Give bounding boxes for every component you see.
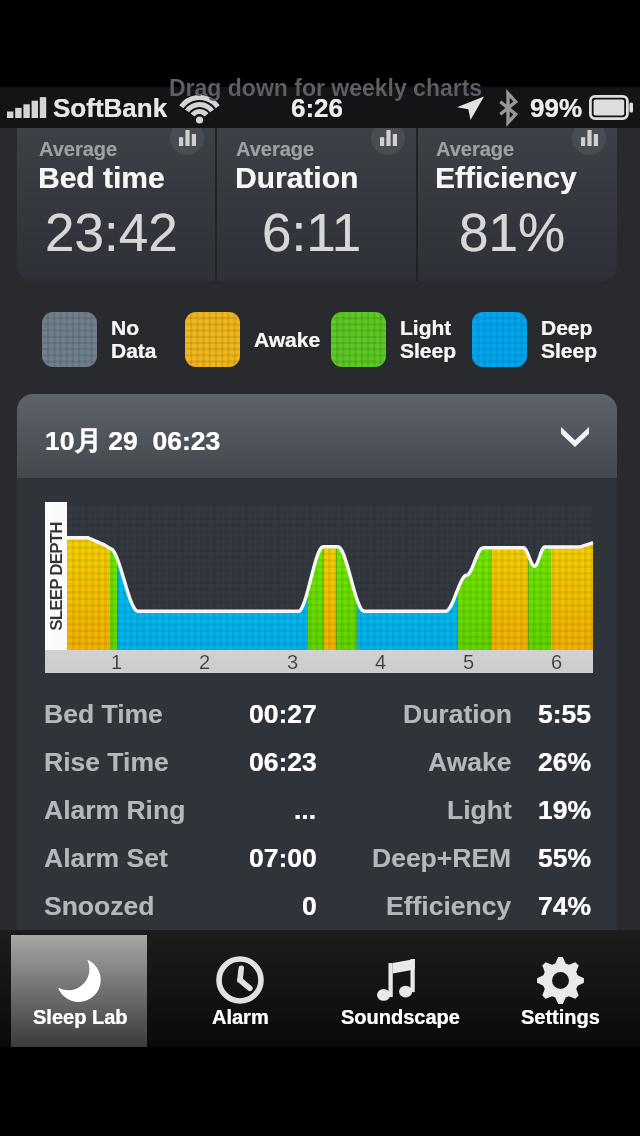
staticText: 6:26 xyxy=(291,93,344,122)
button[interactable]: Settings xyxy=(480,930,640,1047)
button[interactable]: Snoozed xyxy=(17,882,617,930)
staticText: 81% xyxy=(459,203,566,262)
staticText: Efficiency xyxy=(435,161,577,195)
staticText: 5 xyxy=(463,651,475,673)
staticText: Light xyxy=(447,795,512,825)
staticText: 4 xyxy=(375,651,387,673)
staticText: Alarm Ring xyxy=(44,795,186,825)
staticText: Deep+REM xyxy=(372,843,512,873)
staticText: ... xyxy=(294,795,317,825)
staticText: SLEEP DEPTH xyxy=(46,501,65,651)
staticText: Sleep Lab xyxy=(33,1006,128,1028)
staticText: Duration xyxy=(403,699,512,729)
staticText: Average xyxy=(236,138,315,160)
button[interactable]: Light Sleep xyxy=(331,312,457,367)
button[interactable]: Alarm Ring xyxy=(17,786,617,834)
staticText: Bed Time xyxy=(44,699,163,729)
button[interactable]: Soundscape xyxy=(320,930,480,1047)
staticText: Alarm xyxy=(212,1006,269,1028)
staticText: 19% xyxy=(538,795,592,825)
staticText: Average xyxy=(39,138,118,160)
staticText: Alarm Set xyxy=(44,843,168,873)
staticText: 74% xyxy=(538,891,592,921)
button[interactable]: Rise Time xyxy=(17,738,617,786)
button[interactable]: Sleep Lab xyxy=(0,930,160,1047)
staticText: Average xyxy=(436,138,515,160)
staticText: 0 xyxy=(302,891,317,921)
staticText: 07:00 xyxy=(249,843,317,873)
staticText: 3 xyxy=(287,651,299,673)
button[interactable]: Awake xyxy=(185,312,321,367)
button[interactable]: Show chart xyxy=(371,121,405,155)
button[interactable]: Alarm xyxy=(160,930,320,1047)
other: Expand entry xyxy=(561,427,589,447)
staticText: 55% xyxy=(538,843,592,873)
staticText: 99% xyxy=(530,93,583,122)
staticText: Deep Sleep xyxy=(541,316,598,363)
staticText: 23:42 xyxy=(45,203,178,262)
staticText: Settings xyxy=(521,1006,600,1028)
button[interactable]: Average xyxy=(217,113,416,281)
button[interactable]: 10月 29 06:23 xyxy=(17,394,617,478)
staticText: Rise Time xyxy=(44,747,169,777)
staticText: Duration xyxy=(235,161,359,195)
button[interactable]: Deep Sleep xyxy=(472,312,598,367)
staticText: 5:55 xyxy=(538,699,592,729)
button[interactable]: Show chart xyxy=(572,121,606,155)
staticText: Drag down for weekly charts xyxy=(169,75,483,101)
staticText: 6:11 xyxy=(262,203,362,262)
staticText: Snoozed xyxy=(44,891,155,921)
staticText: No Data xyxy=(111,316,157,363)
button[interactable]: Average xyxy=(17,113,215,281)
staticText: 10月 29 06:23 xyxy=(45,424,221,457)
staticText: 26% xyxy=(538,747,592,777)
staticText: Bed time xyxy=(38,161,165,195)
staticText: SoftBank xyxy=(53,93,168,122)
button[interactable]: Average xyxy=(418,113,617,281)
staticText: 6 xyxy=(551,651,563,673)
staticText: 1 xyxy=(111,651,123,673)
staticText: Efficiency xyxy=(386,891,512,921)
staticText: Soundscape xyxy=(341,1006,460,1028)
staticText: Light Sleep xyxy=(400,316,457,363)
staticText: 00:27 xyxy=(249,699,317,729)
button[interactable]: No Data xyxy=(42,312,157,367)
staticText: 06:23 xyxy=(249,747,317,777)
button[interactable]: Show chart xyxy=(170,121,204,155)
button[interactable]: Bed Time xyxy=(17,690,617,738)
staticText: Awake xyxy=(428,747,512,777)
button[interactable]: Alarm Set xyxy=(17,834,617,882)
staticText: Awake xyxy=(254,328,321,351)
staticText: 2 xyxy=(199,651,211,673)
